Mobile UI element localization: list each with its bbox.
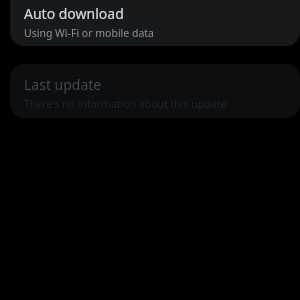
button[interactable]: Last update: [10, 64, 300, 118]
staticText: Auto download: [24, 4, 124, 23]
staticText: There's no information about this update: [24, 97, 227, 111]
staticText: Using Wi-Fi or mobile data: [24, 26, 154, 40]
button[interactable]: Auto download: [10, 0, 300, 46]
staticText: Last update: [24, 75, 102, 94]
